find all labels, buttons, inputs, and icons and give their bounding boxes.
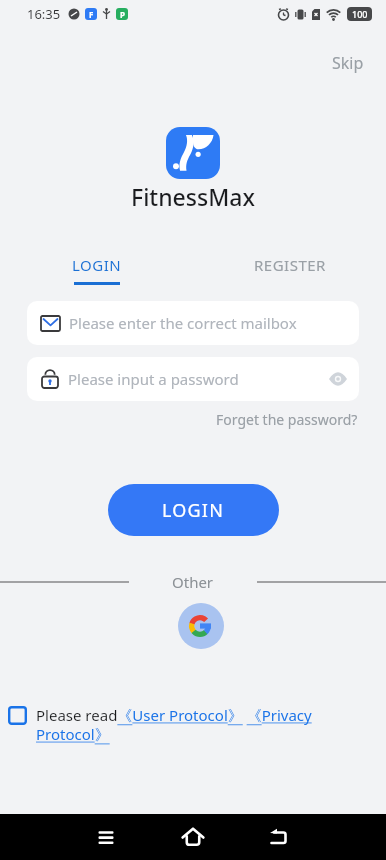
button[interactable] <box>268 825 292 849</box>
staticText: Other <box>172 572 214 592</box>
button[interactable]: Forget the password? <box>216 410 358 429</box>
button[interactable]: Please input a password <box>27 357 359 401</box>
staticText: LOGIN <box>72 255 122 275</box>
staticText: FitnessMax <box>131 181 255 212</box>
staticText: 100 <box>352 8 368 20</box>
button[interactable] <box>94 825 118 849</box>
staticText: LOGIN <box>162 498 225 523</box>
staticText: Please input a password <box>68 369 239 389</box>
staticText: Forget the password? <box>216 410 358 429</box>
button[interactable]: Please read《User Protocol》 《Privacy Prot… <box>8 705 368 745</box>
staticText: Skip <box>332 52 364 74</box>
button[interactable]: LOGIN <box>0 255 193 285</box>
button[interactable]: REGISTER <box>193 255 386 275</box>
staticText: Please read《User Protocol》 《Privacy Prot… <box>36 705 368 745</box>
staticText: REGISTER <box>254 255 326 275</box>
button[interactable]: Skip <box>332 52 364 74</box>
button[interactable] <box>178 603 224 649</box>
button[interactable]: LOGIN <box>108 484 279 536</box>
button[interactable] <box>329 372 347 386</box>
button[interactable]: Please enter the correct mailbox <box>27 301 359 345</box>
staticText: Please enter the correct mailbox <box>69 313 297 333</box>
staticText: P <box>120 9 125 20</box>
staticText: 16:35 <box>27 5 61 23</box>
staticText: F <box>89 9 94 20</box>
button[interactable] <box>180 824 206 850</box>
